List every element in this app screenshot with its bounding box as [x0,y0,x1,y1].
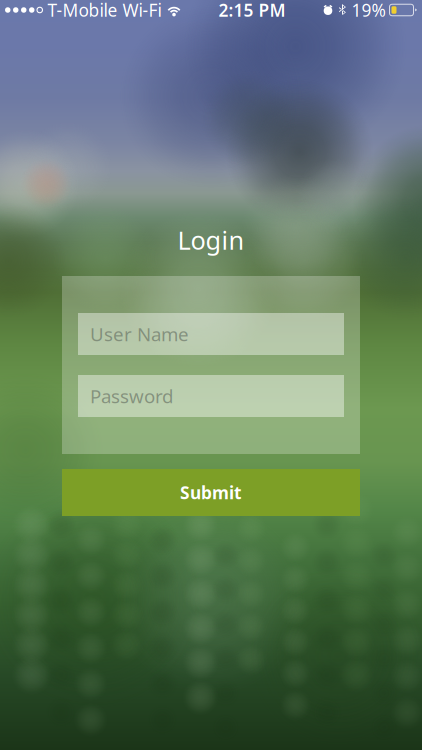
staticText: Password [90,384,173,408]
staticText: 19% [351,0,385,21]
staticText: 2:15 PM [218,0,285,21]
button[interactable]: Password [78,375,344,417]
staticText: Submit [180,481,242,504]
button[interactable]: User Name [78,313,344,355]
staticText: T-Mobile Wi-Fi [47,0,161,21]
staticText: Login [177,223,244,257]
staticText: User Name [90,322,189,346]
button[interactable]: Submit [62,469,360,516]
